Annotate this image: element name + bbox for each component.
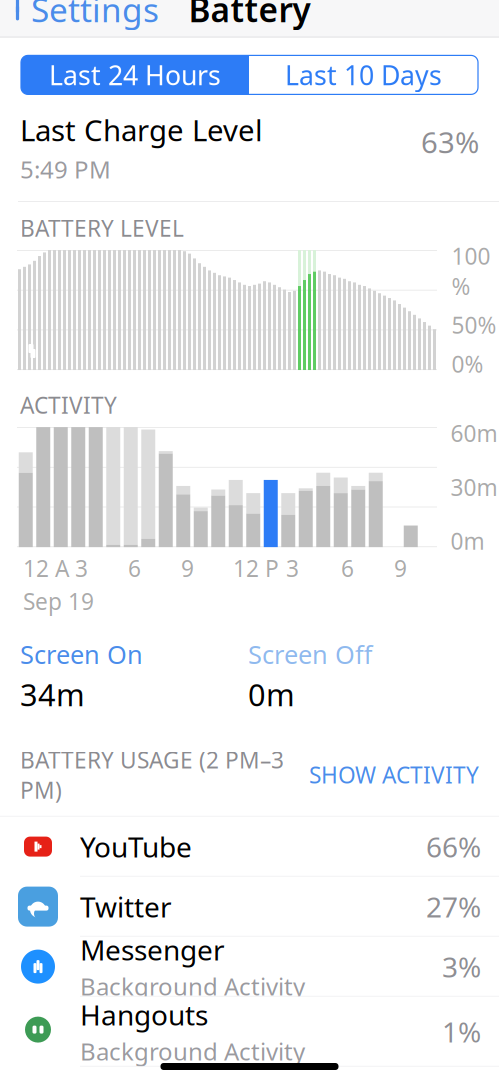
staticText: Screen On (20, 637, 143, 671)
staticText: 9 (394, 553, 407, 583)
staticText: 34m (20, 674, 85, 715)
staticText: 3 (286, 553, 299, 583)
staticText: 60m (450, 418, 497, 448)
staticText: ACTIVITY (20, 390, 117, 420)
staticText: SHOW ACTIVITY (309, 760, 479, 790)
button[interactable]: Last 10 Days (249, 55, 478, 94)
staticText: Screen Off (248, 637, 372, 671)
button[interactable]: Hangouts (0, 997, 499, 1067)
staticText: Last Charge Level (20, 110, 263, 149)
staticText: Battery (188, 0, 310, 32)
staticText: 3 (75, 553, 88, 583)
button[interactable]: Twitter (0, 877, 499, 937)
staticText: 27% (426, 888, 481, 925)
staticText: Twitter (80, 888, 172, 925)
staticText: BATTERY USAGE (2 PM–3 PM) (20, 745, 284, 805)
staticText: 1% (442, 1013, 481, 1050)
staticText: Hangouts (80, 996, 208, 1033)
button[interactable]: YouTube (0, 817, 499, 877)
staticText: 0% (451, 349, 483, 379)
button[interactable]: S (0, 1067, 499, 1080)
staticText: 9 (181, 553, 194, 583)
staticText: 0m (248, 674, 295, 715)
staticText: 6 (128, 553, 141, 583)
staticText: Last 24 Hours (49, 57, 221, 93)
button[interactable]: Messenger (0, 937, 499, 997)
staticText: 5:49 PM (20, 153, 111, 185)
staticText: 50% (451, 310, 496, 340)
staticText: 100% (451, 241, 490, 301)
staticText: Background Activity (80, 970, 305, 1002)
staticText: 6 (341, 553, 354, 583)
staticText: YouTube (80, 828, 192, 865)
staticText: BATTERY LEVEL (20, 213, 184, 243)
staticText: Last 10 Days (285, 57, 442, 93)
button[interactable]: Last 24 Hours (21, 55, 249, 94)
staticText: Messenger (80, 931, 225, 968)
staticText: 66% (426, 828, 481, 865)
staticText: Settings (31, 0, 159, 32)
button[interactable]: Settings (0, 0, 159, 38)
staticText: Background Activity (80, 1035, 305, 1067)
staticText: 30m (450, 472, 497, 502)
staticText: 12 P (233, 553, 279, 583)
staticText: Sep 19 (23, 586, 94, 616)
staticText: 12 A (23, 553, 69, 583)
staticText: 0m (450, 526, 484, 556)
staticText: 63% (421, 122, 479, 161)
staticText: 3% (442, 948, 481, 985)
button[interactable]: SHOW ACTIVITY (309, 756, 499, 794)
